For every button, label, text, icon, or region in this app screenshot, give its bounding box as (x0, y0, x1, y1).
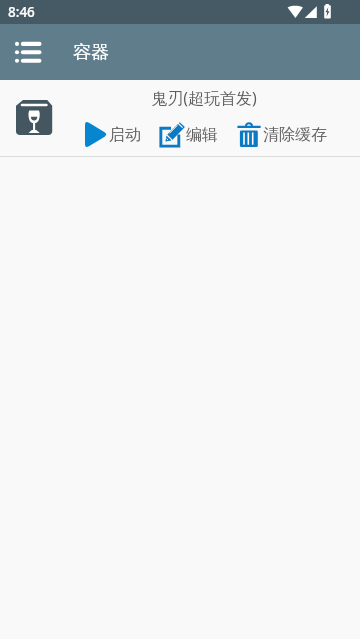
staticText: 8:46 (8, 3, 35, 21)
button[interactable]: 鬼刃(超玩首发) (16, 100, 53, 137)
button[interactable]: 编辑 (159, 122, 218, 148)
staticText: 鬼刃(超玩首发) (52, 87, 356, 109)
button[interactable]: 启动 (85, 122, 141, 147)
staticText: 编辑 (186, 125, 218, 145)
staticText: 启动 (109, 125, 141, 145)
button[interactable]: 菜单 (0, 24, 56, 80)
staticText: 清除缓存 (263, 125, 327, 145)
staticText: 容器 (73, 41, 109, 64)
button[interactable]: 清除缓存 (237, 122, 327, 148)
